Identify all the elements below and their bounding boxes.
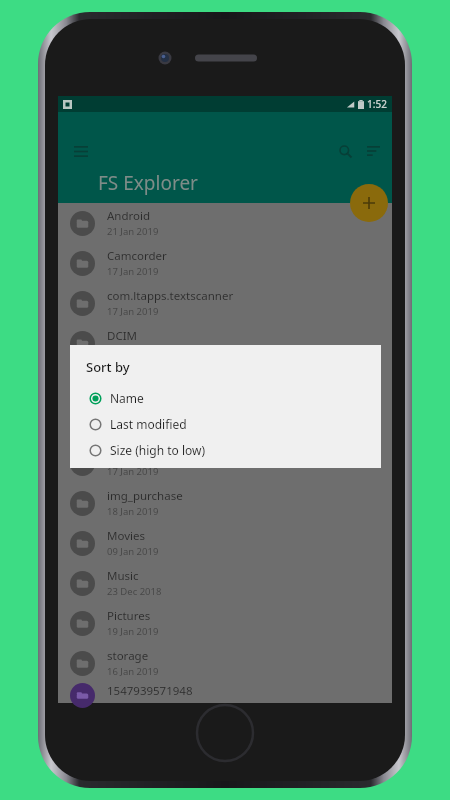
button[interactable]: Add [350, 184, 388, 222]
staticText: Camcorder [107, 248, 167, 264]
staticText: com.ltapps.textscanner [107, 288, 234, 304]
button[interactable]: Android [58, 203, 392, 243]
staticText: 17 Jan 2019 [107, 465, 159, 478]
button[interactable]: Sort [360, 138, 386, 164]
staticText: 23 Dec 2018 [107, 585, 162, 598]
staticText: 21 Jan 2019 [107, 225, 159, 238]
staticText: Music [107, 568, 139, 584]
staticText: 1:52 [367, 97, 387, 111]
staticText: 09 Jan 2019 [107, 545, 159, 558]
staticText: Name [110, 390, 144, 406]
button[interactable]: Name [70, 385, 381, 411]
staticText: img_purchase [107, 488, 183, 504]
staticText: Last modified [110, 416, 187, 432]
staticText: 1547939571948 [107, 683, 193, 699]
button[interactable]: com.ltapps.textscanner [58, 283, 392, 323]
staticText: Pictures [107, 608, 151, 624]
staticText: Movies [107, 528, 145, 544]
staticText: Sort by [86, 358, 130, 376]
button[interactable]: Menu [68, 138, 94, 164]
button[interactable]: Fonts [58, 403, 392, 443]
button[interactable]: Search [332, 138, 358, 164]
button[interactable]: storage [58, 643, 392, 683]
staticText: FS Explorer [98, 170, 198, 196]
staticText: storage [107, 648, 149, 664]
button[interactable]: Movies [58, 523, 392, 563]
staticText: 17 Jan 2019 [107, 265, 159, 278]
button[interactable]: Download [58, 363, 392, 403]
staticText: DCIM [107, 328, 137, 344]
staticText: 17 Jan 2019 [107, 305, 159, 318]
button[interactable]: DCIM [58, 323, 392, 363]
button[interactable]: Last modified [70, 411, 381, 437]
button[interactable]: Pictures [58, 603, 392, 643]
staticText: Android [107, 208, 151, 224]
staticText: Download [107, 368, 162, 384]
button[interactable]: Images [58, 443, 392, 483]
button[interactable]: Camcorder [58, 243, 392, 283]
staticText: 17 Jan 2019 [107, 385, 159, 398]
staticText: Fonts [107, 408, 137, 424]
button[interactable]: 1547939571948 [58, 683, 392, 703]
staticText: 19 Jan 2019 [107, 625, 159, 638]
staticText: 16 Jan 2019 [107, 665, 159, 678]
staticText: 18 Jan 2019 [107, 505, 159, 518]
button[interactable]: Music [58, 563, 392, 603]
button[interactable]: img_purchase [58, 483, 392, 523]
staticText: Images [107, 448, 148, 464]
button[interactable]: Size (high to low) [70, 437, 381, 463]
staticText: 17 Jan 2019 [107, 425, 159, 438]
staticText: Size (high to low) [110, 442, 206, 458]
